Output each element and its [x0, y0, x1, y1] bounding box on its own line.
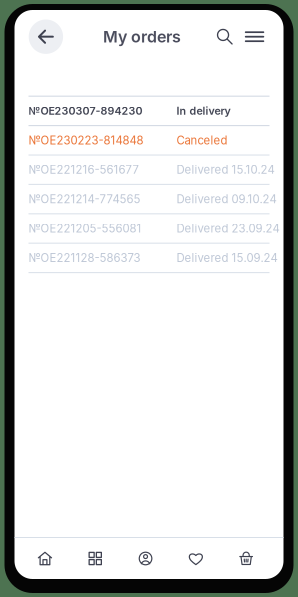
button[interactable]: Menu	[245, 22, 264, 52]
button[interactable]: №OE221216-561677	[28, 155, 269, 184]
staticText: My orders	[103, 27, 181, 46]
button[interactable]: №OE230307-894230	[28, 97, 269, 125]
button[interactable]: Favorites	[171, 538, 221, 579]
button[interactable]: Search	[217, 22, 233, 52]
staticText: №OE221214-774565	[28, 192, 140, 206]
staticText: №OE221128-586373	[28, 251, 140, 265]
staticText: Delivered 23.09.24	[176, 222, 279, 235]
button[interactable]: №OE221205-556081	[28, 214, 269, 243]
staticText: №OE221216-561677	[28, 163, 138, 176]
button[interactable]: №OE230223-814848	[28, 126, 269, 154]
button[interactable]: Catalog	[70, 538, 120, 579]
staticText: №OE230223-814848	[28, 133, 143, 147]
staticText: Canceled	[176, 133, 227, 147]
staticText: №OE230307-894230	[28, 104, 142, 117]
staticText: Delivered 09.10.24	[176, 192, 276, 206]
staticText: Delivered 15.10.24	[176, 163, 274, 176]
button[interactable]: Back	[29, 19, 63, 54]
staticText: №OE221205-556081	[28, 222, 141, 235]
staticText: In delivery	[176, 104, 230, 117]
staticText: Delivered 15.09.24	[176, 251, 277, 265]
button[interactable]: №OE221128-586373	[28, 244, 269, 272]
button[interactable]: Cart	[221, 538, 271, 579]
button[interactable]: Profile	[120, 538, 171, 579]
button[interactable]: Home	[20, 538, 70, 579]
button[interactable]: №OE221214-774565	[28, 185, 269, 213]
